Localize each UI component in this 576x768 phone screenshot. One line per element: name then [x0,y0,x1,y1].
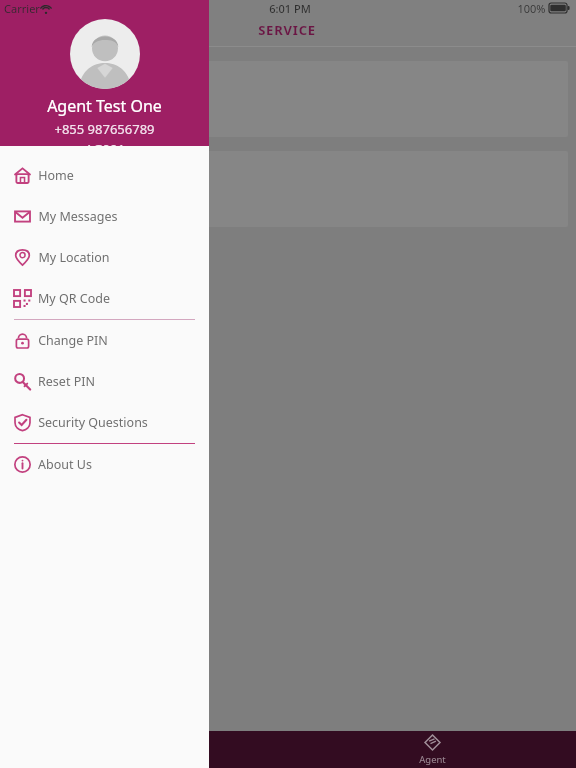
staticText: My QR Code [38,290,110,307]
staticText: Security Questions [38,414,148,431]
button[interactable]: Home [0,155,209,196]
button[interactable]: My QR Code [0,278,209,319]
staticText: SERVICE [258,21,316,39]
button[interactable]: My Location [0,237,209,278]
staticText: 100% [517,1,546,16]
button[interactable]: Profile photo [70,19,140,89]
button[interactable]: hant [8,151,568,227]
button[interactable] [8,61,568,137]
staticText: +855 987656789 [54,120,155,138]
button[interactable]: Agent [288,731,576,768]
staticText: About Us [38,456,92,473]
button[interactable]: Report [0,731,288,768]
staticText: Home [38,167,74,184]
staticText: Carrier [4,1,40,16]
staticText: 6:01 PM [269,1,311,16]
staticText: Agent [419,753,446,766]
staticText: hant [8,181,34,197]
staticText: My Messages [38,208,118,225]
staticText: Agent Test One [47,95,162,117]
staticText: My Location [38,249,110,266]
staticText: Change PIN [38,332,108,349]
button[interactable]: My Messages [0,196,209,237]
button[interactable]: Security Questions [0,402,209,443]
button[interactable]: Reset PIN [0,361,209,402]
staticText: AG001 [85,140,125,146]
button[interactable]: Change PIN [0,320,209,361]
staticText: Reset PIN [38,373,95,390]
button[interactable]: About Us [0,444,209,485]
